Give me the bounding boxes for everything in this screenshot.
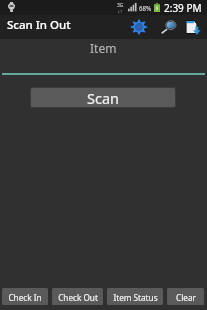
staticText: Scan <box>87 88 120 107</box>
button[interactable]: Scan <box>31 88 175 107</box>
button[interactable]: Check In <box>2 288 48 305</box>
staticText: Item Status <box>113 292 158 303</box>
button[interactable]: Item <box>0 39 207 75</box>
staticText: Check Out <box>58 292 98 303</box>
staticText: 3G <box>117 2 124 9</box>
button[interactable]: Settings <box>124 15 153 39</box>
button[interactable]: Save <box>181 15 205 39</box>
staticText: Clear <box>176 292 196 303</box>
staticText: Check In <box>8 292 42 303</box>
staticText: Scan In Out <box>7 17 71 33</box>
staticText: 68% <box>139 4 152 12</box>
staticText: Item <box>90 40 117 56</box>
button[interactable]: Clear <box>167 288 204 305</box>
staticText: 2:39 PM <box>164 1 202 15</box>
button[interactable]: Item Status <box>107 288 163 305</box>
button[interactable]: Search <box>155 15 181 39</box>
staticText: LT <box>118 9 123 14</box>
button[interactable]: Check Out <box>52 288 103 305</box>
